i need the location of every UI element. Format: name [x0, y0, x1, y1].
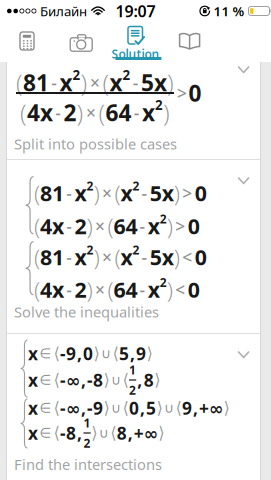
staticText: ⟨ — [112, 344, 118, 363]
button[interactable]: Collapse step — [233, 346, 255, 363]
staticText: ( — [34, 242, 40, 272]
staticText: ( — [34, 211, 40, 241]
staticText: x — [120, 179, 132, 207]
staticText: × — [102, 181, 112, 204]
staticText: - — [66, 278, 72, 301]
staticText: ⟨ — [122, 370, 128, 390]
staticText: < — [182, 245, 192, 268]
staticText: 2 — [122, 66, 130, 84]
staticText: 4x — [40, 275, 64, 304]
staticText: ( — [34, 178, 40, 208]
staticText: ⟨ — [110, 423, 116, 443]
staticText: 2 — [155, 96, 163, 114]
staticText: ∪ — [164, 400, 174, 416]
staticText: ) — [93, 242, 99, 272]
staticText: Solve the inequalities — [14, 302, 159, 321]
staticText: > — [182, 181, 192, 204]
staticText: ) — [174, 242, 180, 272]
staticText: x — [74, 243, 86, 271]
staticText: 0 — [195, 243, 207, 271]
staticText: ∈ — [39, 400, 51, 416]
staticText: x — [28, 342, 38, 365]
staticText: × — [102, 245, 112, 268]
staticText: ( — [107, 274, 113, 304]
button[interactable]: Collapse step — [233, 61, 255, 78]
staticText: ⟨ — [53, 344, 59, 363]
staticText: 2 — [160, 274, 167, 290]
staticText: 2 — [74, 275, 86, 304]
staticText: x — [142, 97, 155, 127]
staticText: ) — [163, 97, 170, 128]
staticText: x — [28, 396, 38, 419]
staticText: , — [77, 342, 82, 365]
staticText: , — [137, 368, 142, 391]
staticText: ⟨ — [122, 398, 128, 418]
staticText: 0 — [188, 275, 200, 304]
staticText: ( — [107, 211, 113, 241]
staticText: x — [120, 243, 132, 271]
staticText: 8 — [117, 421, 127, 444]
staticText: ⟨ — [53, 370, 59, 390]
staticText: ⟨ — [175, 398, 181, 418]
staticText: × — [86, 101, 96, 124]
button[interactable]: Collapse step — [233, 172, 255, 189]
staticText: ( — [20, 97, 27, 128]
staticText: x — [148, 275, 160, 304]
staticText: 2 — [86, 242, 93, 258]
staticText: ⟩ — [91, 423, 97, 443]
staticText: ∪ — [99, 425, 109, 441]
staticText: ⟩ — [146, 344, 152, 363]
staticText: 1 — [129, 362, 136, 378]
staticText: 9 — [182, 396, 192, 419]
staticText: ⟩ — [158, 423, 164, 443]
staticText: -∞ — [60, 368, 80, 391]
staticText: 2 — [129, 382, 136, 398]
staticText: x — [28, 368, 38, 391]
staticText: Find the intersections — [14, 454, 162, 474]
staticText: 81 — [40, 179, 64, 207]
staticText: 81 — [23, 67, 49, 97]
staticText: -∞ — [60, 396, 80, 419]
staticText: ⟩ — [156, 398, 162, 418]
button[interactable]: Camera — [54, 22, 108, 60]
staticText: ( — [114, 178, 120, 208]
staticText: ( — [16, 67, 23, 98]
staticText: Solution — [111, 46, 159, 62]
staticText: 5 — [119, 342, 129, 365]
staticText: , — [81, 368, 86, 391]
staticText: 8 — [144, 368, 154, 391]
staticText: ⟩ — [103, 398, 109, 418]
staticText: ⟩ — [103, 370, 109, 390]
staticText: ⟨ — [53, 398, 59, 418]
staticText: ) — [80, 67, 87, 98]
staticText: ⟩ — [154, 370, 160, 390]
staticText: Билайн — [40, 2, 87, 20]
staticText: 2 — [132, 242, 139, 258]
button[interactable]: Solution — [108, 22, 163, 60]
staticText: 2 — [86, 178, 93, 194]
staticText: ⟩ — [223, 398, 229, 418]
staticText: +∞ — [134, 421, 158, 444]
staticText: 0 — [188, 212, 200, 240]
staticText: 64 — [113, 275, 137, 304]
staticText: 0 — [129, 396, 139, 419]
staticText: ) — [86, 211, 92, 241]
staticText: - — [140, 214, 146, 237]
staticText: - — [66, 214, 72, 237]
staticText: - — [66, 245, 72, 268]
staticText: 11 % — [213, 2, 244, 20]
staticText: 5x — [150, 179, 174, 207]
staticText: - — [133, 71, 139, 94]
button[interactable]: Notebook — [163, 22, 217, 60]
button[interactable]: Calculator — [0, 22, 54, 60]
staticText: ) — [174, 178, 180, 208]
staticText: × — [95, 214, 105, 237]
staticText: ∈ — [39, 346, 51, 361]
staticText: 2 — [160, 211, 167, 227]
staticText: 5x — [150, 243, 174, 271]
staticText: 4x — [27, 97, 53, 127]
staticText: ⟨ — [53, 423, 59, 443]
staticText: - — [66, 181, 72, 204]
staticText: ( — [102, 67, 109, 98]
staticText: +∞ — [199, 396, 223, 419]
